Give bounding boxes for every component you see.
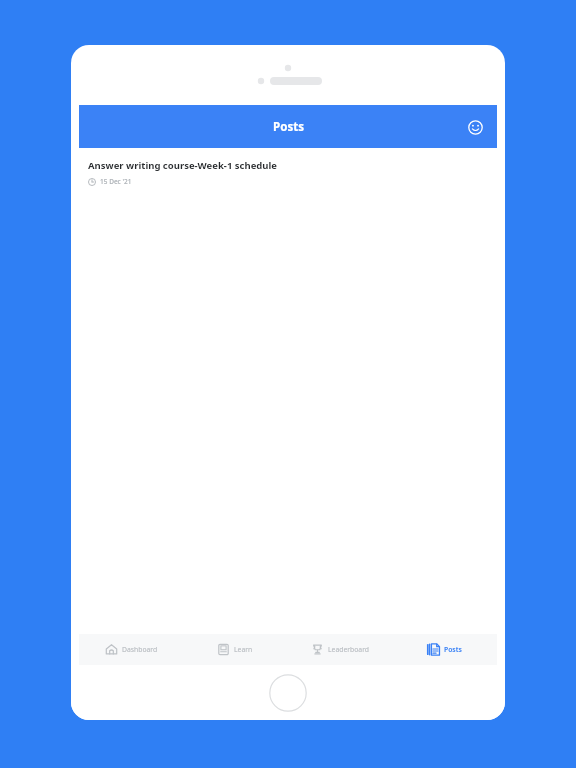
button[interactable]: Leaderboard — [287, 634, 392, 665]
staticText: Learn — [234, 645, 253, 654]
staticText: Leaderboard — [328, 645, 369, 654]
staticText: Posts — [444, 645, 462, 654]
staticText: Dashboard — [122, 645, 158, 654]
button[interactable]: Posts — [392, 634, 497, 665]
staticText: Answer writing course-Week-1 schedule — [88, 159, 277, 172]
staticText: Posts — [273, 119, 304, 135]
button[interactable]: Learn — [183, 634, 287, 665]
button[interactable]: Emoji reactions — [462, 114, 488, 140]
staticText: 15 Dec '21 — [100, 177, 132, 186]
button[interactable]: Answer writing course-Week-1 schedule — [71, 148, 505, 196]
button[interactable]: Home — [269, 674, 307, 712]
button[interactable]: Dashboard — [79, 634, 183, 665]
